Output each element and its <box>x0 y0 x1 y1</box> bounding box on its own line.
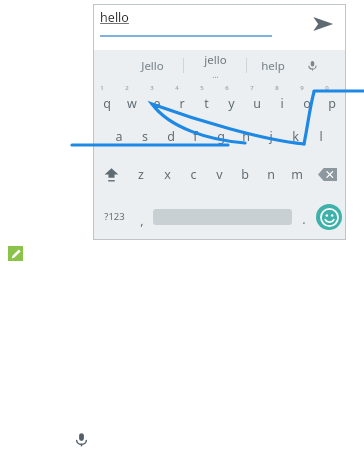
button[interactable]: s <box>132 118 158 155</box>
staticText: 2 <box>125 84 129 92</box>
button[interactable]: , <box>131 197 153 236</box>
staticText: o <box>303 95 311 112</box>
staticText: 4 <box>175 84 179 92</box>
staticText: v <box>216 166 223 183</box>
button[interactable]: x <box>154 155 180 193</box>
button[interactable]: Jello <box>121 50 183 81</box>
button[interactable]: z <box>128 155 154 193</box>
button[interactable]: 5 <box>194 81 219 118</box>
button[interactable]: l <box>308 118 333 155</box>
button[interactable]: jello <box>184 50 246 81</box>
button[interactable]: 8 <box>269 81 294 118</box>
button[interactable]: 9 <box>294 81 319 118</box>
button[interactable]: f <box>183 118 208 155</box>
staticText: b <box>241 166 249 183</box>
staticText: , <box>140 212 144 229</box>
staticText: e <box>153 95 161 112</box>
button[interactable]: g <box>208 118 233 155</box>
staticText: h <box>242 128 250 145</box>
staticText: . <box>302 211 306 228</box>
staticText: ?123 <box>104 210 125 223</box>
button[interactable]: c <box>180 155 206 193</box>
button[interactable]: a <box>106 118 132 155</box>
button[interactable]: m <box>284 155 310 193</box>
button[interactable]: k <box>283 118 308 155</box>
staticText: d <box>167 128 175 145</box>
button[interactable]: . <box>292 197 316 236</box>
button[interactable]: h <box>233 118 258 155</box>
button[interactable]: 6 <box>219 81 244 118</box>
staticText: ... <box>212 69 219 80</box>
button[interactable]: v <box>206 155 232 193</box>
staticText: r <box>179 95 185 112</box>
button[interactable]: Voice input <box>299 50 325 81</box>
button[interactable]: 0 <box>319 81 344 118</box>
staticText: 8 <box>275 84 279 92</box>
staticText: m <box>291 166 303 183</box>
button[interactable]: n <box>258 155 284 193</box>
button[interactable]: d <box>158 118 183 155</box>
staticText: n <box>267 166 275 183</box>
button[interactable]: Emoji <box>316 204 342 230</box>
staticText: 6 <box>225 84 229 92</box>
staticText: jello <box>204 52 227 68</box>
button[interactable]: b <box>232 155 258 193</box>
staticText: c <box>190 166 197 183</box>
staticText: t <box>204 95 209 112</box>
staticText: j <box>269 128 273 145</box>
button[interactable]: hello <box>100 9 310 37</box>
staticText: Jello <box>141 58 164 74</box>
staticText: a <box>115 128 123 145</box>
staticText: l <box>319 128 323 145</box>
button[interactable]: Shift <box>95 155 128 193</box>
staticText: y <box>228 95 235 112</box>
button[interactable]: 2 <box>119 81 144 118</box>
staticText: 3 <box>150 84 154 92</box>
staticText: s <box>142 128 148 145</box>
button[interactable]: Send <box>310 11 336 37</box>
button[interactable]: 3 <box>144 81 169 118</box>
button[interactable]: Backspace <box>310 155 344 193</box>
staticText: i <box>280 95 284 112</box>
staticText: u <box>253 95 261 112</box>
staticText: p <box>328 95 336 112</box>
button[interactable]: help <box>247 50 299 81</box>
staticText: g <box>217 128 225 145</box>
staticText: z <box>138 166 144 183</box>
button[interactable]: Note <box>8 246 23 261</box>
staticText: help <box>261 58 285 74</box>
button[interactable]: 1 <box>95 81 119 118</box>
staticText: 0 <box>325 84 329 92</box>
button[interactable]: ?123 <box>97 197 131 236</box>
staticText: hello <box>100 9 129 26</box>
button[interactable]: j <box>258 118 283 155</box>
staticText: 9 <box>300 84 304 92</box>
staticText: w <box>127 95 137 112</box>
staticText: 5 <box>200 84 204 92</box>
staticText: f <box>193 128 198 145</box>
staticText: q <box>103 95 111 112</box>
staticText: k <box>292 128 299 145</box>
button[interactable]: 7 <box>244 81 269 118</box>
button[interactable]: Voice search <box>72 430 90 448</box>
staticText: 1 <box>100 84 104 92</box>
staticText: x <box>164 166 171 183</box>
staticText: 7 <box>250 84 254 92</box>
button[interactable]: 4 <box>169 81 194 118</box>
